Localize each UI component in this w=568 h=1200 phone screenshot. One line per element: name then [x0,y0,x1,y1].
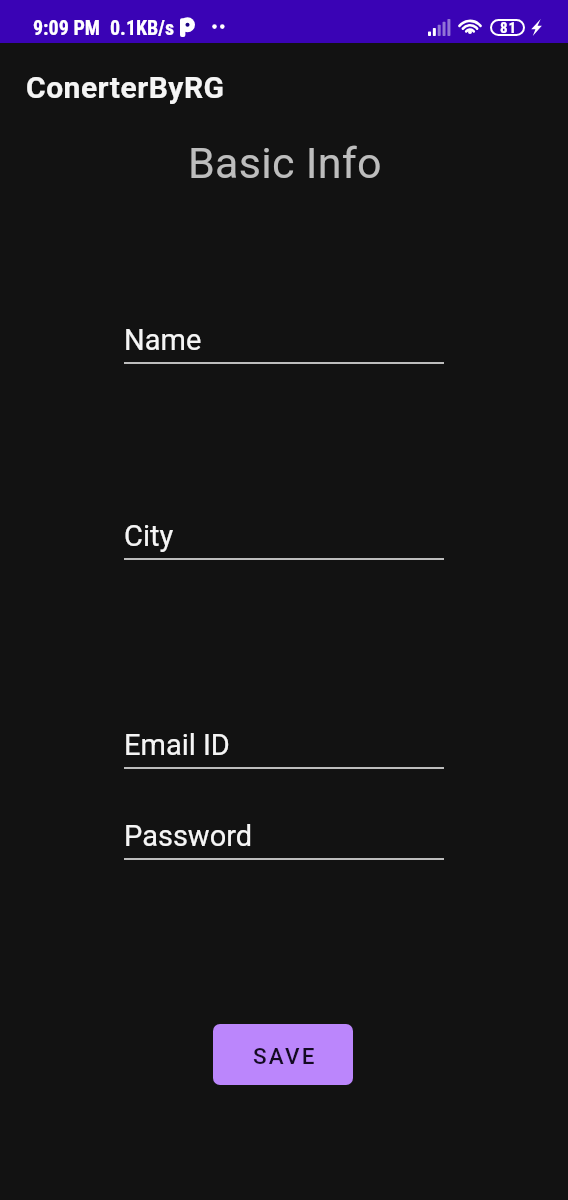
staticText: Basic Info [188,138,382,188]
staticText: ConerterByRG [26,70,225,105]
other: More notifications [210,22,228,32]
staticText: SAVE [253,1043,317,1069]
staticText: 81 [500,19,517,36]
staticText: Email ID [124,728,230,762]
other: Mobile signal [428,19,452,36]
other: Payments notification [180,17,195,37]
button[interactable]: SAVE [213,1024,353,1085]
button[interactable]: ConerterByRG [0,43,568,105]
button[interactable]: Email ID [124,728,444,769]
staticText: 0.1KB/s [110,16,175,39]
other: Battery 81 percent [490,19,525,36]
staticText: Name [124,323,202,357]
other: Charging [531,19,542,36]
staticText: 9:09 PM [33,16,100,39]
staticText: City [124,519,174,553]
staticText: Password [124,819,253,853]
other: Wi-Fi connected [457,17,483,35]
button[interactable]: City [124,519,444,560]
button[interactable]: Name [124,323,444,364]
button[interactable]: Password [124,819,444,860]
